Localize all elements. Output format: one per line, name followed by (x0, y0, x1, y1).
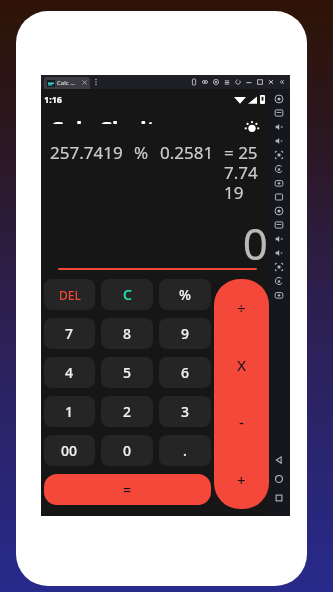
staticText: . (183, 441, 187, 460)
staticText: 0 (123, 441, 132, 460)
staticText: 4 (65, 363, 74, 382)
staticText: 0.2581 (160, 141, 214, 164)
staticText: 0 (224, 213, 268, 273)
staticText: 9 (181, 324, 190, 343)
button[interactable]: Back (273, 454, 285, 466)
button[interactable]: X (214, 336, 269, 393)
button[interactable]: Location (273, 275, 285, 287)
button[interactable]: 4 (44, 357, 95, 388)
button[interactable]: Maximize (256, 78, 264, 86)
button[interactable]: 6 (159, 357, 211, 388)
button[interactable]: Contrast (273, 289, 285, 301)
staticText: Calc Clarity (50, 121, 168, 124)
staticText: 1 (65, 402, 74, 421)
button[interactable]: Volume up (273, 121, 285, 133)
button[interactable]: Minimize (245, 78, 253, 86)
button[interactable]: Account (212, 78, 220, 86)
staticText: 00 (61, 441, 78, 460)
button[interactable]: % (159, 279, 211, 310)
staticText: C (123, 285, 132, 304)
button[interactable]: 8 (101, 318, 153, 349)
button[interactable]: Screen layout (273, 107, 285, 119)
button[interactable]: Volume down (273, 135, 285, 147)
staticText: = (123, 480, 132, 499)
staticText: 257.7419 (50, 141, 123, 164)
button[interactable]: Night mode (273, 247, 285, 259)
button[interactable]: 7 (44, 318, 95, 349)
staticText: = 257.7419 (224, 141, 264, 204)
button[interactable]: Folder (273, 261, 285, 273)
button[interactable]: Screen record (273, 233, 285, 245)
staticText: 8 (123, 324, 132, 343)
staticText: 1:16 (44, 93, 62, 105)
staticText: Calc ... (57, 79, 75, 87)
button[interactable]: 1 (44, 396, 95, 427)
button[interactable]: 5 (101, 357, 153, 388)
staticText: 6 (181, 363, 190, 382)
staticText: 5 (123, 363, 132, 382)
staticText: % (134, 141, 149, 164)
button[interactable]: Home (273, 473, 285, 485)
button[interactable]: Calc ... (44, 77, 90, 89)
button[interactable]: Rotate device (273, 163, 285, 175)
button[interactable]: DEL (44, 279, 95, 310)
button[interactable]: 00 (44, 435, 95, 466)
staticText: - (239, 412, 244, 432)
button[interactable]: 9 (159, 318, 211, 349)
staticText: 7 (65, 324, 74, 343)
staticText: DEL (59, 287, 81, 303)
button[interactable]: C (101, 279, 153, 310)
button[interactable]: + (214, 451, 269, 509)
button[interactable]: Snip (273, 205, 285, 217)
button[interactable]: Close tab (81, 79, 88, 86)
button[interactable]: - (214, 393, 269, 451)
button[interactable]: . (159, 435, 211, 466)
button[interactable]: Power (273, 93, 285, 105)
button[interactable]: 2 (101, 396, 153, 427)
button[interactable]: Menu (223, 78, 231, 86)
button[interactable]: Recent apps (273, 492, 285, 504)
button[interactable]: Toggle light mode (244, 120, 260, 136)
button[interactable]: Rotate (273, 149, 285, 161)
button[interactable]: Close (267, 78, 275, 86)
staticText: % (179, 285, 191, 304)
button[interactable]: Device (190, 78, 198, 86)
button[interactable]: Camera (273, 191, 285, 203)
button[interactable]: Collapse (278, 78, 286, 86)
staticText: 2 (123, 402, 132, 421)
button[interactable]: Snapshots (201, 78, 209, 86)
button[interactable]: More options (92, 78, 100, 86)
button[interactable]: 3 (159, 396, 211, 427)
button[interactable]: 0 (101, 435, 153, 466)
button[interactable]: = (44, 474, 211, 505)
button[interactable]: ÷ (214, 279, 269, 336)
button[interactable]: Restart (234, 78, 242, 86)
staticText: ÷ (237, 298, 246, 318)
staticText: + (237, 470, 246, 490)
staticText: 3 (181, 402, 190, 421)
button[interactable]: Calc Clarity (50, 121, 168, 130)
button[interactable]: Record screen (273, 219, 285, 231)
button[interactable]: Screenshot (273, 177, 285, 189)
staticText: X (237, 355, 247, 375)
